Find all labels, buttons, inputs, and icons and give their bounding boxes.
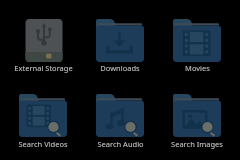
staticText: External Storage [14,63,73,73]
button[interactable]: Movies [159,17,235,73]
button[interactable]: Search Audio [82,92,158,149]
button[interactable]: External Storage [5,17,81,73]
staticText: Search Videos [18,139,68,149]
staticText: Search Images [171,139,223,149]
button[interactable]: Search Videos [5,92,81,149]
staticText: Search Audio [97,139,144,149]
staticText: Movies [185,63,210,73]
button[interactable]: Search Images [159,92,235,149]
staticText: Downloads [100,63,140,73]
button[interactable]: Downloads [82,17,158,73]
